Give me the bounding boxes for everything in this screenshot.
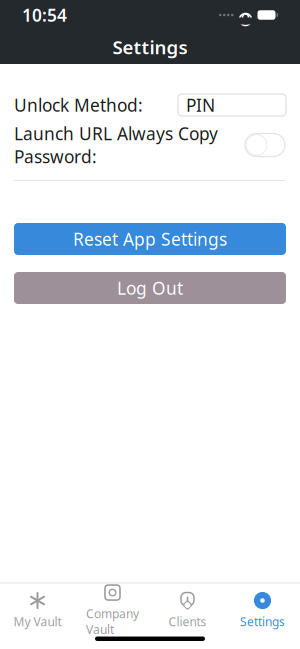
button[interactable]: Clients [150,590,225,630]
staticText: Clients [168,613,206,629]
staticText: Settings [112,35,187,59]
button[interactable]: My Vault [0,590,75,630]
staticText: 10:54 [22,3,67,26]
staticText: Launch URL Always Copy Password: [14,122,218,168]
button[interactable]: Log Out [14,272,286,304]
staticText: Log Out [117,276,183,299]
staticText: PIN [186,93,215,116]
staticText: Reset App Settings [73,227,227,250]
button[interactable]: Settings [225,590,300,630]
button[interactable]: Company Vault [75,590,150,630]
button[interactable]: Launch URL Always Copy Password [244,132,286,157]
staticText: My Vault [13,613,61,629]
staticText: Settings [240,613,285,629]
staticText: Company Vault [86,606,139,637]
button[interactable]: Reset App Settings [14,223,286,255]
button[interactable]: PIN [178,94,286,116]
staticText: Unlock Method: [14,93,143,116]
